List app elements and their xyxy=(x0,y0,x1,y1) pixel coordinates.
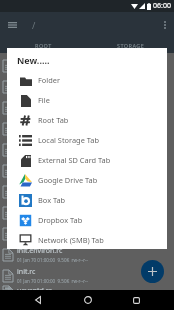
staticText: init.rc xyxy=(17,78,36,88)
button[interactable]: Local Storage Tab xyxy=(7,130,167,150)
button[interactable]: Network (SMB) Tab xyxy=(7,230,167,249)
staticText: init.rc xyxy=(17,162,36,172)
button[interactable]: init.environ.rc xyxy=(0,244,174,265)
staticText: 01 Jan 70 01:00:00 9.50K rw-r--r-- xyxy=(17,173,88,179)
staticText: File xyxy=(38,95,50,105)
button[interactable]: init.zygote32.rc xyxy=(0,202,174,223)
staticText: Dropbox Tab xyxy=(38,215,83,225)
staticText: / xyxy=(32,19,36,31)
staticText: ueventd.rc xyxy=(17,286,52,290)
staticText: Folder xyxy=(38,75,60,85)
staticText: init.angler.usb.rc xyxy=(17,225,72,235)
button[interactable]: Home xyxy=(75,290,100,310)
staticText: init.angler.usb.rc xyxy=(17,120,72,130)
button[interactable]: init.usb.rc xyxy=(0,181,174,202)
button[interactable]: init.environ.rc xyxy=(0,55,174,76)
staticText: STORAGE xyxy=(117,42,145,49)
button[interactable]: Folder xyxy=(7,70,167,90)
staticText: 01 Jan 70 01:00:00 9.50K rw-r--r-- xyxy=(17,110,88,116)
staticText: init.environ.rc xyxy=(17,141,63,151)
staticText: 01 Jan 70 01:00:00 9.50K rw-r--r-- xyxy=(17,194,88,200)
button[interactable]: More options xyxy=(156,16,174,34)
staticText: init.environ.rc xyxy=(17,57,63,67)
staticText: External SD Card Tab xyxy=(38,155,111,165)
staticText: init.usb.rc xyxy=(17,183,50,193)
staticText: 01 Jan 70 01:00:00 9.50K rw-r--r-- xyxy=(17,278,88,284)
button[interactable]: Google Drive Tab xyxy=(7,170,167,190)
button[interactable]: init.angler.usb.rc xyxy=(0,223,174,244)
staticText: Root Tab xyxy=(38,115,69,125)
button[interactable]: init.angler.rc xyxy=(0,97,174,118)
staticText: 06:00 xyxy=(153,1,171,11)
staticText: Network (SMB) Tab xyxy=(38,235,104,245)
staticText: New..... xyxy=(17,54,50,66)
button[interactable]: init.angler.usb.rc xyxy=(0,118,174,139)
button[interactable]: Navigation menu xyxy=(3,16,21,34)
staticText: init.rc xyxy=(17,267,36,277)
staticText: 01 Jan 70 01:00:00 9.50K rw-r--r-- xyxy=(17,215,88,221)
staticText: 01 Jan 70 01:00:00 9.50K rw-r--r-- xyxy=(17,131,88,137)
button[interactable]: init.rc xyxy=(0,160,174,181)
button[interactable]: ueventd.rc xyxy=(0,286,174,290)
button[interactable]: Box Tab xyxy=(7,190,167,210)
staticText: 01 Jan 70 01:00:00 9.50K rw-r--r-- xyxy=(17,257,88,263)
button[interactable]: STORAGE xyxy=(87,37,174,53)
button[interactable]: Back xyxy=(25,290,50,310)
staticText: ROOT xyxy=(35,42,52,49)
button[interactable]: ROOT xyxy=(0,37,87,53)
staticText: 01 Jan 70 01:00:00 9.50K rw-r--r-- xyxy=(17,236,88,242)
button[interactable]: Root Tab xyxy=(7,110,167,130)
button[interactable]: External SD Card Tab xyxy=(7,150,167,170)
staticText: Local Storage Tab xyxy=(38,135,99,145)
button[interactable]: init.environ.rc xyxy=(0,139,174,160)
button[interactable]: init.rc xyxy=(0,265,174,286)
staticText: Box Tab xyxy=(38,195,66,205)
staticText: Google Drive Tab xyxy=(38,175,98,185)
button[interactable]: init.rc xyxy=(0,76,174,97)
button[interactable]: Add xyxy=(141,260,164,283)
button[interactable]: Dropbox Tab xyxy=(7,210,167,230)
button[interactable]: File xyxy=(7,90,167,110)
staticText: init.zygote32.rc xyxy=(17,204,68,214)
staticText: init.angler.rc xyxy=(17,99,58,109)
staticText: 01 Jan 70 01:00:00 9.50K rw-r--r-- xyxy=(17,152,88,158)
staticText: init.environ.rc xyxy=(17,246,63,256)
button[interactable]: Recent apps xyxy=(124,290,149,310)
